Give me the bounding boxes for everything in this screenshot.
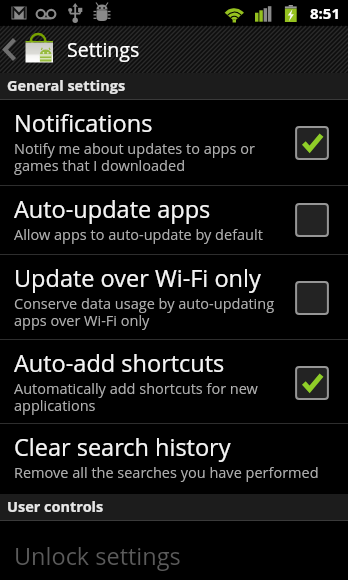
staticText: General settings <box>7 76 126 96</box>
staticText: Clear search history <box>14 431 231 463</box>
staticText: Auto-update apps <box>14 193 211 225</box>
staticText: Remove all the searches you have perform… <box>14 463 319 483</box>
button[interactable]: Clear search history <box>0 424 348 494</box>
button[interactable]: Navigate up <box>0 26 62 73</box>
staticText: Notify me about updates to apps or games… <box>14 139 255 175</box>
staticText: 8:51 <box>310 3 340 23</box>
staticText: Auto-add shortcuts <box>14 347 225 379</box>
button[interactable]: Update over Wi-Fi only <box>0 255 348 339</box>
button[interactable]: Auto-update apps <box>0 186 348 254</box>
staticText: Settings <box>67 36 140 63</box>
staticText: Update over Wi-Fi only <box>14 262 261 294</box>
staticText: Allow apps to auto-update by default <box>14 225 263 245</box>
button[interactable]: Unlock settings <box>0 521 348 580</box>
button[interactable]: Notifications <box>0 100 348 185</box>
button[interactable]: Auto-add shortcuts <box>0 340 348 423</box>
staticText: Automatically add shortcuts for new appl… <box>14 379 258 415</box>
staticText: Conserve data usage by auto-updating app… <box>14 294 275 330</box>
staticText: Notifications <box>14 107 153 139</box>
staticText: Unlock settings <box>14 540 181 572</box>
staticText: User controls <box>7 497 104 517</box>
